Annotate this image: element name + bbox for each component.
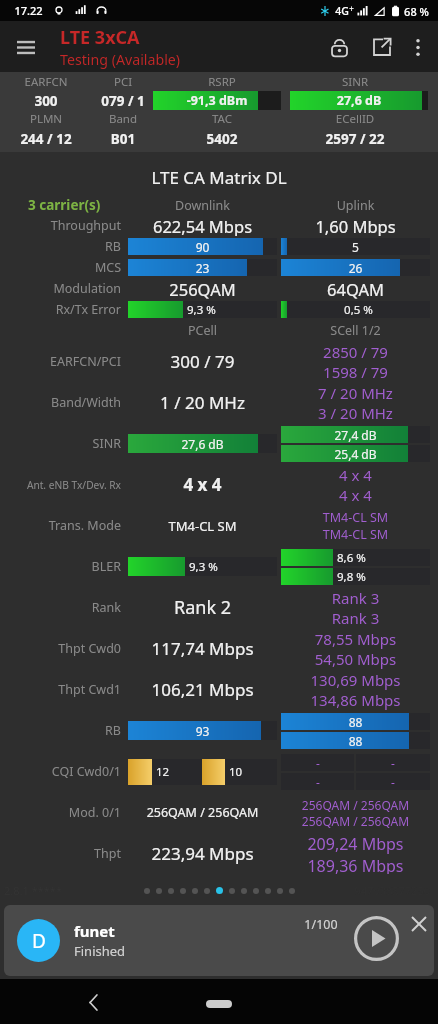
staticText: SINR	[0, 435, 121, 452]
staticText: 90	[128, 239, 277, 255]
staticText: 4 x 4	[128, 473, 277, 496]
staticText: 23	[128, 260, 277, 276]
button[interactable]: Home	[206, 1000, 232, 1008]
button[interactable]: D	[4, 905, 434, 976]
staticText: Rank 2	[128, 595, 277, 620]
staticText: 189,36 Mbps	[281, 855, 430, 874]
staticText: 2597 / 22	[282, 130, 428, 148]
staticText: PLMN	[8, 111, 84, 127]
staticText: -	[316, 755, 320, 771]
staticText: RSRP	[162, 74, 282, 90]
staticText: 622,54 Mbps	[128, 215, 277, 236]
staticText: -	[316, 774, 320, 790]
staticText: 88	[281, 733, 430, 749]
staticText: 1/100	[304, 916, 338, 933]
staticText: -	[391, 755, 395, 771]
staticText: B01	[84, 130, 162, 148]
staticText: Thpt Cwd0	[0, 640, 121, 657]
staticText: Band/Width	[0, 394, 121, 411]
staticText: TM4-CL SM	[128, 517, 277, 535]
staticText: TM4-CL SM	[281, 526, 430, 543]
staticText: 244 / 12	[8, 130, 84, 148]
staticText: 4 x 4	[281, 465, 430, 485]
staticText: 4 x 4	[281, 485, 430, 505]
staticText: 1,60 Mbps	[281, 215, 430, 236]
staticText: LTE 3xCA	[60, 25, 140, 50]
button[interactable]: Lock	[317, 25, 361, 69]
staticText: 3 carrier(s)	[28, 196, 128, 214]
staticText: Uplink	[281, 197, 430, 214]
staticText: TAC	[162, 111, 282, 127]
staticText: 256QAM / 256QAM	[281, 797, 430, 813]
staticText: -	[391, 774, 395, 790]
staticText: 3 / 20 MHz	[281, 403, 430, 423]
staticText: 4G	[335, 4, 349, 18]
staticText: Finished	[74, 942, 126, 960]
staticText: PCell	[128, 322, 277, 339]
staticText: 9,8 %	[337, 569, 366, 585]
staticText: Thpt	[0, 845, 121, 862]
staticText: 64QAM	[281, 278, 430, 299]
staticText: Modulation	[0, 280, 121, 297]
staticText: Mod. 0/1	[0, 804, 121, 821]
button[interactable]: Close	[404, 909, 434, 939]
staticText: D	[32, 928, 46, 954]
staticText: 17.22	[14, 3, 43, 18]
staticText: 68 %	[404, 4, 429, 19]
button[interactable]: Play	[352, 914, 400, 962]
staticText: Rank 3	[281, 588, 430, 608]
staticText: funet	[74, 921, 115, 941]
staticText: Downlink	[128, 197, 277, 214]
staticText: BLER	[0, 558, 121, 575]
staticText: 27,4 dB	[281, 427, 430, 443]
button[interactable]: Open navigation drawer	[5, 26, 47, 68]
staticText: Testing (Available)	[60, 50, 181, 69]
staticText: 2850 / 79	[281, 342, 430, 362]
staticText: -91,3 dBm	[153, 92, 281, 109]
staticText: EARFCN	[8, 74, 84, 90]
staticText: 8,6 %	[337, 550, 366, 566]
staticText: 78,55 Mbps	[281, 629, 430, 649]
staticText: 9,3 %	[187, 302, 216, 318]
staticText: 7 / 20 MHz	[281, 383, 430, 403]
button[interactable]: More options	[400, 29, 436, 65]
staticText: 300	[8, 92, 84, 110]
staticText: 9,3 %	[189, 559, 218, 575]
staticText: 25,4 dB	[281, 446, 430, 462]
staticText: TM4-CL SM	[281, 509, 430, 526]
staticText: LTE CA Matrix DL	[0, 166, 438, 189]
staticText: 256QAM / 256QAM	[281, 813, 430, 829]
staticText: CQI Cwd0/1	[0, 763, 121, 780]
staticText: 1598 / 79	[281, 362, 430, 382]
staticText: EARFCN/PCI	[0, 353, 121, 370]
staticText: Thpt Cwd1	[0, 681, 121, 698]
staticText: 106,21 Mbps	[128, 678, 277, 701]
staticText: 1 / 20 MHz	[128, 391, 277, 414]
staticText: +	[349, 3, 354, 14]
staticText: Trans. Mode	[0, 517, 121, 534]
staticText: ECellID	[282, 111, 428, 127]
staticText: 223,94 Mbps	[128, 842, 277, 865]
staticText: 26	[281, 260, 430, 276]
staticText: 209,24 Mbps	[281, 833, 430, 855]
staticText: RB	[0, 238, 121, 255]
staticText: 0,5 %	[287, 302, 430, 318]
staticText: 134,86 Mbps	[281, 690, 430, 710]
staticText: 079 / 1	[84, 92, 162, 110]
staticText: Throughput	[0, 217, 121, 234]
staticText: 300 / 79	[128, 350, 277, 373]
button[interactable]: Share	[360, 25, 404, 69]
staticText: 130,69 Mbps	[281, 670, 430, 690]
staticText: 93	[128, 723, 277, 739]
staticText: SINR	[282, 74, 428, 90]
staticText: Ant. eNB Tx/Dev. Rx	[0, 478, 121, 492]
staticText: SCell 1/2	[281, 322, 430, 339]
staticText: 256QAM / 256QAM	[128, 804, 277, 821]
staticText: 54,50 Mbps	[281, 649, 430, 669]
button[interactable]: Back	[75, 984, 111, 1020]
staticText: 88	[281, 714, 430, 730]
staticText: RB	[0, 722, 121, 739]
staticText: PCI	[84, 74, 162, 90]
